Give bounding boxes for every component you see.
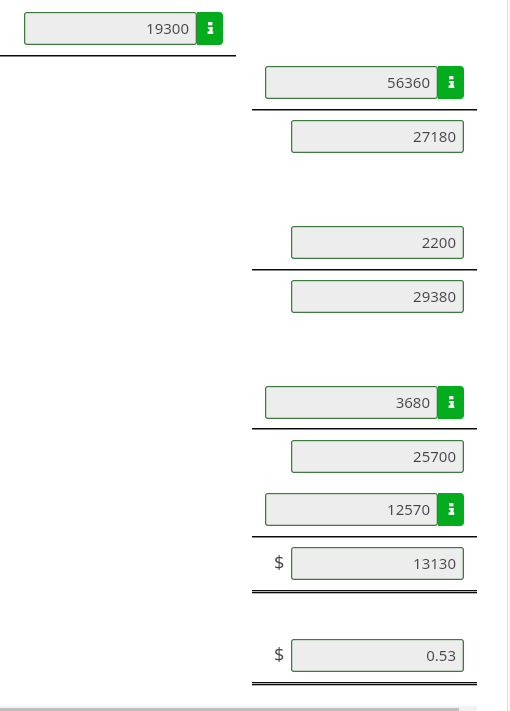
button[interactable]: 25700 <box>291 440 464 473</box>
button[interactable]: 56360 <box>265 66 438 99</box>
staticText: 3680 <box>395 392 430 412</box>
staticText: 27180 <box>413 126 456 146</box>
staticText: 19300 <box>146 18 189 38</box>
button[interactable]: 12570 <box>265 493 438 526</box>
staticText: 2200 <box>421 232 456 252</box>
button[interactable]: Info <box>438 66 464 99</box>
staticText: 25700 <box>413 446 456 466</box>
staticText: 0.53 <box>426 645 456 665</box>
button[interactable]: Info <box>438 386 464 419</box>
button[interactable]: 2200 <box>291 226 464 259</box>
staticText: 12570 <box>387 499 430 519</box>
button[interactable]: Info <box>438 493 464 526</box>
button[interactable]: 27180 <box>291 120 464 153</box>
button[interactable]: 19300 <box>24 12 197 45</box>
button[interactable]: 0.53 <box>291 639 464 672</box>
button[interactable]: Info <box>197 12 223 45</box>
staticText: 13130 <box>413 553 456 573</box>
staticText: 56360 <box>387 72 430 92</box>
button[interactable]: 3680 <box>265 386 438 419</box>
button[interactable]: 29380 <box>291 280 464 313</box>
staticText: 29380 <box>413 286 456 306</box>
button[interactable]: 13130 <box>291 547 464 580</box>
staticText: $ <box>274 642 285 667</box>
staticText: $ <box>274 550 285 575</box>
